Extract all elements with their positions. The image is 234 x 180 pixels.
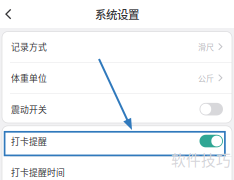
button[interactable]: 打卡提醒 [2, 126, 232, 156]
staticText: 打卡提醒 [11, 135, 47, 147]
staticText: 震动开关 [11, 103, 47, 115]
button[interactable]: 体重单位 [2, 63, 232, 93]
staticText: 软件技巧 [171, 149, 231, 170]
staticText: 记录方式 [11, 40, 47, 53]
staticText: 公斤 [198, 72, 214, 84]
button[interactable]: 震动开关 [2, 94, 232, 124]
button[interactable]: 打卡提醒时间 [2, 157, 232, 180]
button[interactable]: 记录方式 [2, 31, 232, 62]
staticText: 打卡提醒时间 [11, 166, 65, 179]
staticText: 滑尺 [198, 41, 214, 53]
button[interactable]: Back [0, 2, 18, 25]
staticText: 系统设置 [95, 6, 139, 22]
staticText: 体重单位 [11, 72, 47, 84]
